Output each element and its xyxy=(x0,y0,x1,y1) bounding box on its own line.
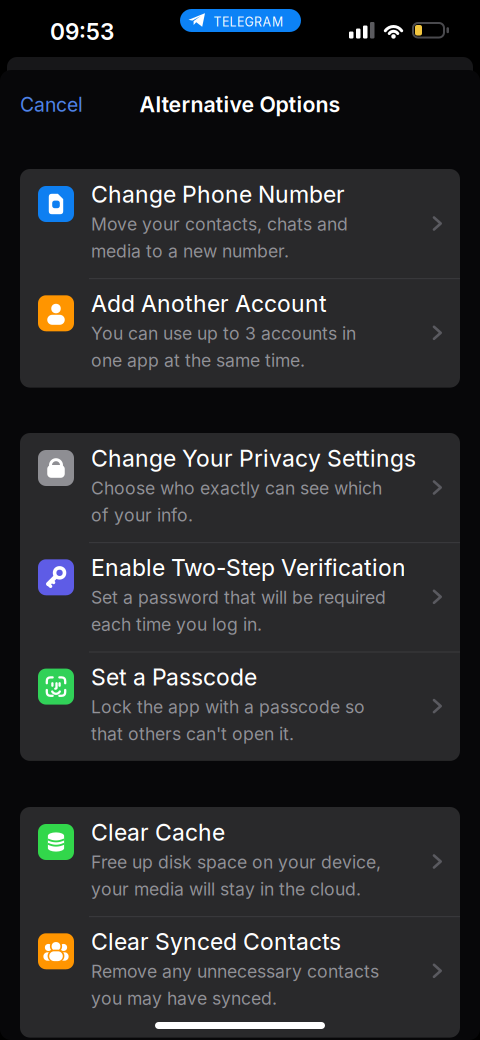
button[interactable]: Set a Passcode xyxy=(20,652,460,761)
button[interactable]: Cancel xyxy=(20,93,83,116)
staticText: TELEGRAM xyxy=(213,14,283,29)
staticText: Change Your Privacy Settings xyxy=(91,444,416,472)
staticText: Move your contacts, chats and media to a… xyxy=(91,213,348,262)
button[interactable]: Change Your Privacy Settings xyxy=(20,433,460,542)
button[interactable]: TELEGRAM xyxy=(180,9,301,32)
staticText: Clear Cache xyxy=(91,818,225,846)
staticText: 09:53 xyxy=(50,18,114,45)
staticText: You can use up to 3 accounts in one app … xyxy=(91,323,356,371)
button[interactable]: Enable Two-Step Verification xyxy=(20,542,460,652)
staticText: Cancel xyxy=(20,93,83,116)
staticText: Change Phone Number xyxy=(91,180,345,208)
staticText: Free up disk space on your device, your … xyxy=(91,851,381,900)
staticText: Add Another Account xyxy=(91,290,327,318)
staticText: Remove any unnecessary contacts you may … xyxy=(91,961,379,1009)
staticText: Set a password that will be required eac… xyxy=(91,587,386,635)
staticText: Lock the app with a passcode so that oth… xyxy=(91,696,365,744)
staticText: Set a Passcode xyxy=(91,663,257,691)
button[interactable]: Add Another Account xyxy=(20,278,460,388)
staticText: Alternative Options xyxy=(139,92,340,117)
staticText: Enable Two-Step Verification xyxy=(91,554,406,582)
button[interactable]: Change Phone Number xyxy=(20,169,460,278)
button[interactable]: Clear Synced Contacts xyxy=(20,916,460,1038)
staticText: Clear Synced Contacts xyxy=(91,928,341,956)
button[interactable]: Clear Cache xyxy=(20,807,460,916)
staticText: Choose who exactly can see which of your… xyxy=(91,477,382,526)
